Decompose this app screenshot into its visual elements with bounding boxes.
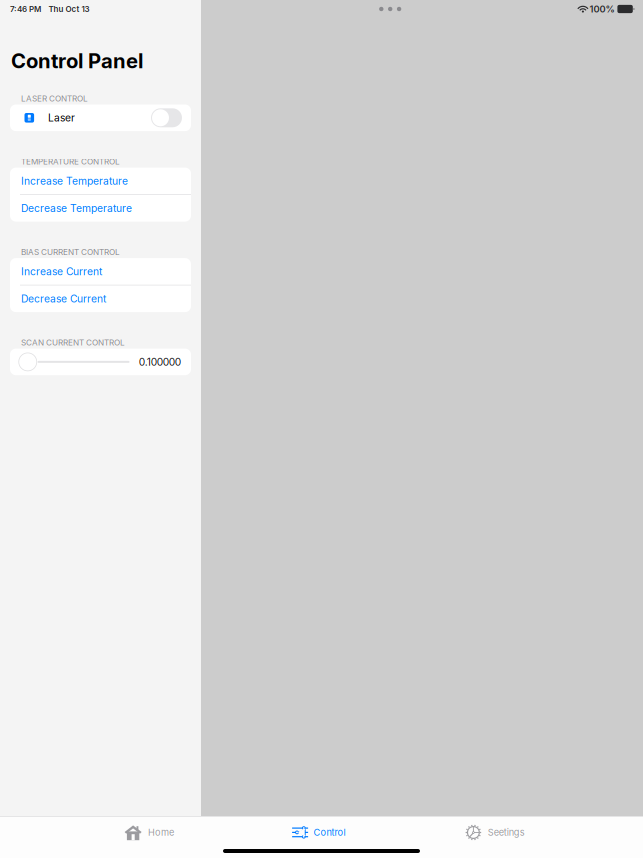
button[interactable]: Decrease Temperature <box>10 195 191 222</box>
staticText: 0.100000 <box>139 356 181 368</box>
staticText: Decrease Current <box>21 293 106 305</box>
staticText: 100% <box>589 3 614 15</box>
staticText: Control <box>314 827 346 838</box>
button[interactable]: Laser <box>151 108 182 127</box>
staticText: Laser <box>48 112 75 124</box>
staticText: Thu Oct 13 <box>48 4 89 14</box>
staticText: TEMPERATURE CONTROL <box>21 157 120 166</box>
button[interactable]: Increase Current <box>10 258 191 285</box>
staticText: 7:46 PM <box>10 4 41 14</box>
staticText: Control Panel <box>11 49 143 73</box>
staticText: Increase Current <box>21 265 102 278</box>
staticText: Home <box>148 827 174 838</box>
button[interactable]: Seetings <box>466 823 525 841</box>
staticText: Seetings <box>488 827 525 838</box>
staticText: SCAN CURRENT CONTROL <box>21 338 125 347</box>
staticText: LASER CONTROL <box>21 94 88 103</box>
button[interactable]: Home <box>125 823 174 841</box>
button[interactable]: Control <box>292 823 346 841</box>
button[interactable]: Increase Temperature <box>10 168 191 194</box>
staticText: Decrease Temperature <box>21 202 132 214</box>
staticText: BIAS CURRENT CONTROL <box>21 247 120 257</box>
button[interactable]: Decrease Current <box>10 285 191 312</box>
staticText: Increase Temperature <box>21 175 128 187</box>
